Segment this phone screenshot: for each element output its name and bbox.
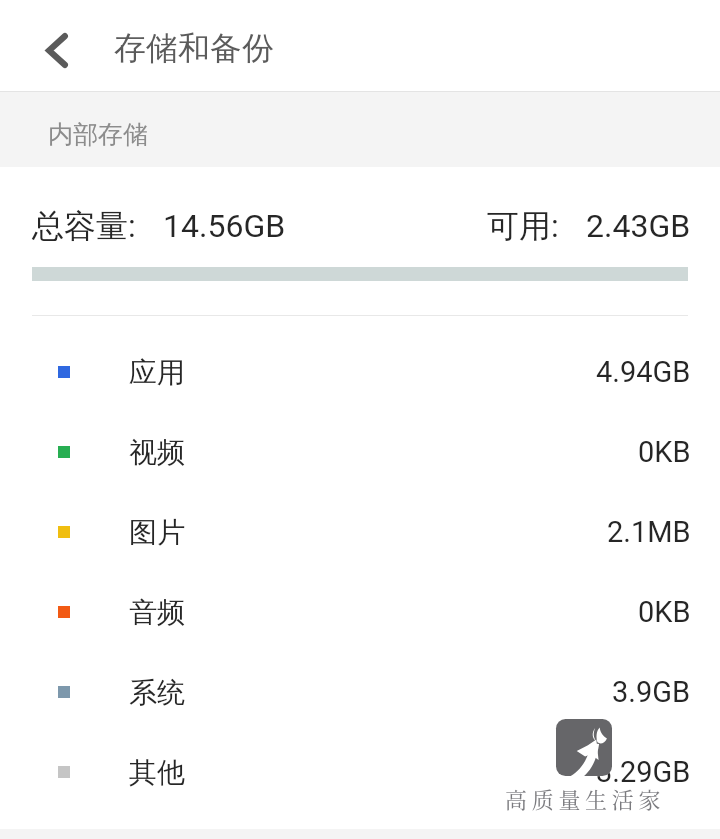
staticText: 3.9GB [612,675,691,709]
staticText: 3.29GB [596,755,691,789]
button[interactable]: 应用 [0,332,720,412]
staticText: 可用 [487,206,551,246]
staticText: 音频 [129,595,185,630]
staticText: 应用 [129,355,185,390]
staticText: 存储和备份 [114,28,274,68]
staticText: 图片 [129,515,185,550]
button[interactable]: 图片 [0,492,720,572]
button[interactable]: 视频 [0,412,720,492]
staticText: 4.94GB [596,355,691,389]
button[interactable]: 其他 [0,732,720,812]
button[interactable]: 系统 [0,652,720,732]
staticText: 其他 [129,755,185,790]
button[interactable]: 音频 [0,572,720,652]
staticText: : [551,207,559,245]
staticText: 2.1MB [607,515,691,549]
staticText: 系统 [129,675,185,710]
staticText: 14.56GB [163,207,286,245]
staticText: 视频 [129,435,185,470]
staticText: 2.43GB [586,207,691,245]
staticText: 内部存储 [48,119,148,150]
button[interactable]: Back [22,17,92,83]
staticText: 总容量 [32,206,128,246]
staticText: 0KB [638,435,691,469]
staticText: 0KB [638,595,691,629]
staticText: : [128,207,136,245]
staticText: 高质量生活家 [505,783,666,815]
